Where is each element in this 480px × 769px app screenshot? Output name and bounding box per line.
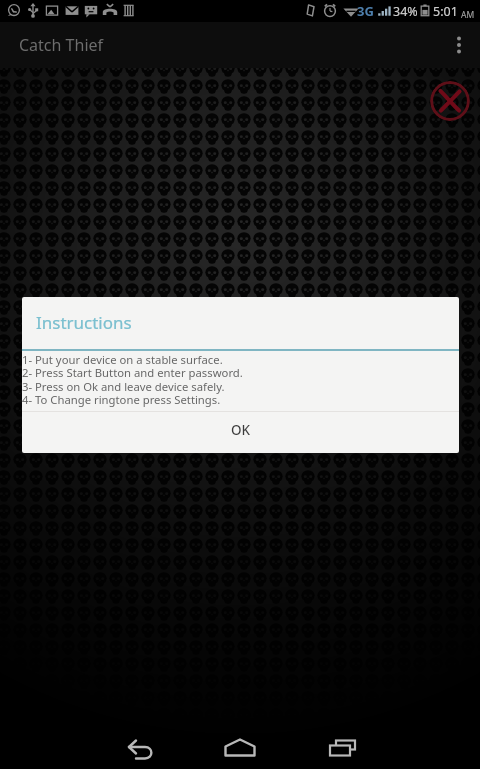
staticText: 4- To Change ringtone press Settings.: [22, 392, 221, 407]
button[interactable]: Back: [121, 733, 161, 769]
staticText: 3G: [357, 2, 374, 20]
staticText: AM: [461, 9, 475, 21]
button[interactable]: Home: [220, 733, 260, 769]
staticText: 3- Press on Ok and leave device safely.: [22, 379, 225, 394]
button[interactable]: OK: [22, 412, 459, 453]
staticText: 34%: [393, 3, 418, 20]
button[interactable]: Close: [430, 81, 470, 121]
staticText: 2- Press Start Button and enter password…: [22, 365, 243, 380]
staticText: Instructions: [36, 311, 132, 334]
staticText: 5:01: [433, 3, 458, 20]
staticText: OK: [231, 421, 251, 439]
button[interactable]: Recents: [325, 733, 365, 769]
staticText: Catch Thief: [19, 34, 104, 56]
staticText: 1- Put your device on a stable surface.: [22, 352, 223, 367]
button[interactable]: More options: [438, 22, 480, 68]
